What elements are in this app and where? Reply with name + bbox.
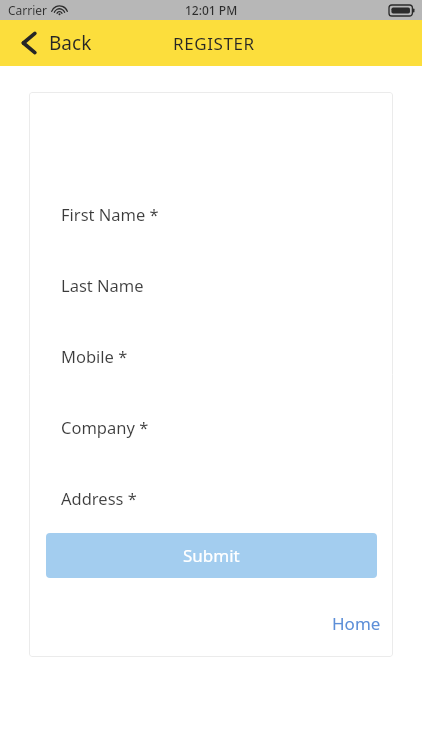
staticText: Submit [183, 544, 240, 567]
button[interactable]: Last Name [29, 263, 393, 307]
staticText: Last Name [61, 274, 144, 296]
staticText: Company * [61, 416, 149, 438]
button[interactable]: Company * [29, 405, 393, 449]
button[interactable]: Back [0, 24, 106, 62]
button[interactable]: First Name * [29, 192, 393, 236]
staticText: Mobile * [61, 345, 128, 367]
button[interactable]: Address * [29, 476, 393, 520]
staticText: 12:01 PM [185, 2, 238, 18]
other: Back [22, 32, 36, 54]
button[interactable]: Submit [46, 533, 377, 578]
staticText: REGISTER [173, 32, 255, 55]
staticText: Address * [61, 487, 137, 509]
button[interactable]: Mobile * [29, 334, 393, 378]
staticText: First Name * [61, 203, 159, 225]
staticText: Home [332, 612, 381, 635]
button[interactable]: Home [326, 608, 387, 639]
staticText: Back [49, 30, 92, 56]
staticText: Carrier [8, 2, 48, 18]
